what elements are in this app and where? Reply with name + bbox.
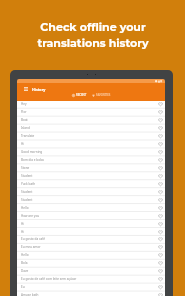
button[interactable]: Bom dia e boba (17, 156, 165, 164)
staticText: Eu gosto de café com leite sem açúcar (21, 277, 77, 281)
staticText: Amuse bath (21, 293, 39, 296)
staticText: FAVORITES (96, 93, 111, 97)
staticText: Hello (21, 253, 29, 257)
button[interactable]: Hi (17, 140, 165, 148)
button[interactable]: Translate (17, 132, 165, 140)
staticText: Student (21, 190, 33, 194)
staticText: Hi (21, 230, 25, 234)
button[interactable]: Eu gosto de café com leite sem açúcar (17, 275, 165, 283)
button[interactable]: Eu (17, 283, 165, 291)
staticText: Bom dia e boba (21, 158, 44, 162)
button[interactable]: FAVORITES (91, 92, 112, 98)
button[interactable]: Eu meu amor (17, 243, 165, 251)
staticText: Hello (21, 206, 29, 210)
staticText: Boat (21, 118, 28, 122)
staticText: Island (21, 126, 30, 130)
staticText: Check offline your translations history (37, 20, 149, 49)
staticText: Flor (21, 110, 27, 114)
button[interactable]: Island (17, 124, 165, 132)
staticText: Eu gosto da café (21, 237, 45, 241)
button[interactable]: Boat (17, 116, 165, 124)
button[interactable]: Amuse bath (17, 291, 165, 296)
button[interactable]: Good morning (17, 148, 165, 156)
button[interactable]: Flor (17, 108, 165, 116)
button[interactable]: Bola (17, 259, 165, 267)
button[interactable]: Student (17, 196, 165, 204)
button[interactable]: Yuck bath (17, 180, 165, 188)
staticText: Hi (21, 142, 25, 146)
staticText: Dave (21, 269, 29, 273)
staticText: Eu (21, 285, 25, 289)
button[interactable]: Student (17, 188, 165, 196)
staticText: Translate (21, 134, 35, 138)
button[interactable]: Open navigation menu (23, 86, 29, 92)
button[interactable]: Hello (17, 251, 165, 259)
staticText: RECENT (76, 93, 87, 97)
staticText: Student (21, 198, 33, 202)
staticText: Bola (21, 261, 28, 265)
button[interactable]: RECENT (71, 92, 88, 98)
staticText: Hey (21, 102, 27, 106)
staticText: Hi (21, 222, 25, 226)
button[interactable]: Hey (17, 100, 165, 108)
button[interactable]: Student (17, 172, 165, 180)
button[interactable]: Hi (17, 228, 165, 236)
button[interactable]: Hi (17, 220, 165, 228)
button[interactable]: Dave (17, 267, 165, 275)
staticText: ● ▲ ▮ (155, 79, 163, 83)
staticText: Good morning (21, 150, 43, 154)
staticText: History (32, 87, 46, 92)
staticText: Eu meu amor (21, 245, 41, 249)
staticText: Stone (21, 166, 30, 170)
button[interactable]: Hello (17, 204, 165, 212)
button[interactable]: How are you (17, 212, 165, 220)
staticText: Student (21, 174, 33, 178)
button[interactable]: Stone (17, 164, 165, 172)
staticText: Yuck bath (21, 182, 36, 186)
staticText: How are you (21, 214, 40, 218)
button[interactable]: Eu gosto da café (17, 235, 165, 243)
